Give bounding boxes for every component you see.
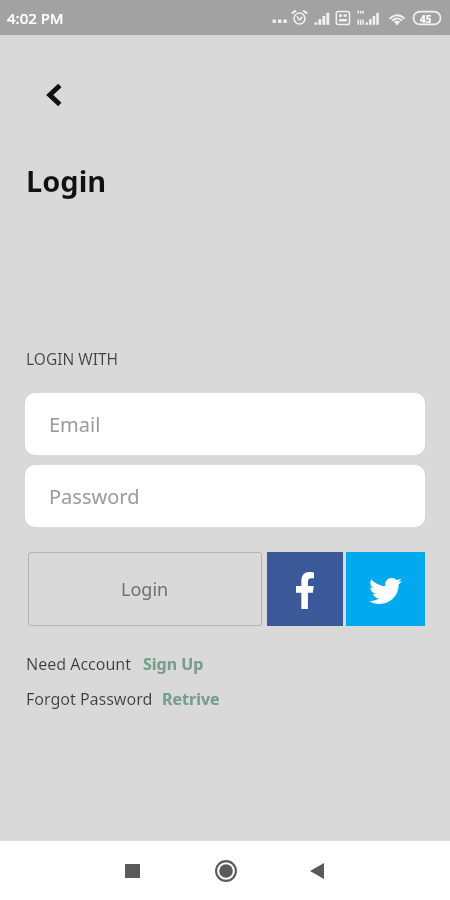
button[interactable]: Recents — [111, 849, 154, 892]
staticText: Login — [26, 161, 107, 200]
button[interactable]: Sign Up — [143, 653, 204, 675]
button[interactable]: Retrive — [162, 688, 220, 710]
staticText: 45 — [420, 12, 432, 26]
button[interactable]: Login — [28, 552, 262, 626]
staticText: Email — [49, 411, 101, 438]
button[interactable]: Password — [25, 465, 425, 527]
button[interactable]: Login with Twitter — [346, 552, 425, 626]
staticText: Sign Up — [143, 653, 204, 675]
button[interactable]: Login with Facebook — [267, 552, 343, 626]
staticText: LOGIN WITH — [26, 348, 119, 369]
staticText: Login — [121, 577, 169, 602]
button[interactable]: Home — [204, 849, 247, 892]
staticText: Password — [49, 483, 140, 510]
staticText: Retrive — [162, 688, 220, 710]
button[interactable]: Email — [25, 393, 425, 455]
button[interactable]: Back — [37, 77, 73, 113]
staticText: Need Account — [26, 653, 132, 675]
button[interactable]: Back — [295, 849, 338, 892]
staticText: 4:02 PM — [7, 8, 64, 28]
staticText: Forgot Password — [26, 688, 153, 710]
